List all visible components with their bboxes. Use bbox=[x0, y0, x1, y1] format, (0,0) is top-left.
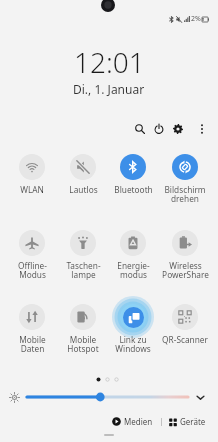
staticText: WLAN bbox=[20, 184, 44, 195]
staticText: Mobile Hotspot bbox=[67, 334, 99, 354]
staticText: QR-Scanner bbox=[162, 334, 208, 345]
button[interactable]: Brightness slider bbox=[24, 391, 190, 403]
staticText: Lautlos bbox=[69, 184, 98, 195]
button[interactable]: Expand quick settings bbox=[194, 391, 207, 404]
button[interactable]: Geräte bbox=[167, 416, 208, 427]
button[interactable]: Lautlos bbox=[57, 154, 109, 195]
button[interactable]: Search bbox=[130, 119, 150, 139]
button[interactable]: Brightness bbox=[8, 391, 20, 403]
button[interactable]: WLAN bbox=[6, 154, 58, 195]
button[interactable]: Offline- Modus bbox=[6, 230, 58, 280]
button[interactable]: Energie- modus bbox=[107, 230, 159, 280]
staticText: Taschen- lampe bbox=[66, 260, 101, 280]
staticText: Bluetooth bbox=[114, 184, 153, 195]
staticText: Energie- modus bbox=[117, 260, 150, 280]
staticText: Geräte bbox=[180, 416, 206, 427]
button[interactable]: Power bbox=[149, 119, 169, 139]
button[interactable]: Medien bbox=[110, 416, 155, 427]
button[interactable]: Wireless PowerShare bbox=[159, 230, 211, 280]
button[interactable]: Taschen- lampe bbox=[57, 230, 109, 280]
staticText: Mobile Daten bbox=[19, 334, 46, 354]
staticText: Link zu Windows bbox=[115, 334, 151, 354]
button[interactable]: Mobile Daten bbox=[6, 304, 58, 354]
staticText: Offline- Modus bbox=[18, 260, 47, 280]
staticText: Di., 1. Januar bbox=[73, 81, 145, 97]
button[interactable]: Link zu Windows bbox=[107, 304, 159, 354]
staticText: 12:01 bbox=[74, 43, 145, 81]
button[interactable]: Mobile Hotspot bbox=[57, 304, 109, 354]
staticText: Bildschirm drehen bbox=[164, 184, 206, 204]
button[interactable]: Bluetooth bbox=[107, 154, 159, 195]
button[interactable]: Settings bbox=[168, 119, 188, 139]
staticText: 2% bbox=[191, 14, 201, 24]
button[interactable]: More options bbox=[192, 119, 212, 139]
staticText: Medien bbox=[124, 416, 153, 427]
staticText: Wireless PowerShare bbox=[162, 260, 209, 280]
button[interactable]: QR-Scanner bbox=[159, 304, 211, 345]
button[interactable]: Bildschirm drehen bbox=[159, 154, 211, 204]
